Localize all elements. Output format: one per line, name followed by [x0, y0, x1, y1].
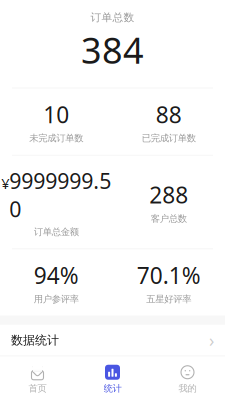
staticText: 首页	[28, 383, 46, 394]
button[interactable]: 数据统计	[0, 325, 225, 356]
staticText: 用户参评率	[34, 293, 79, 305]
staticText: 未完成订单数	[29, 132, 83, 144]
staticText: ›	[209, 329, 214, 352]
staticText: 数据统计	[11, 333, 59, 348]
staticText: 70.1%	[137, 260, 201, 290]
staticText: 88	[156, 99, 182, 129]
staticText: 统计	[103, 383, 121, 394]
staticText: 10	[43, 99, 69, 129]
button[interactable]: 我的	[150, 360, 225, 398]
staticText: 订单总数	[90, 11, 134, 24]
staticText: ¥	[1, 173, 9, 193]
staticText: 五星好评率	[146, 293, 191, 305]
button[interactable]: 首页	[0, 360, 75, 398]
button[interactable]: 统计	[75, 360, 150, 398]
staticText: 已完成订单数	[142, 132, 196, 144]
staticText: 客户总数	[151, 213, 187, 224]
staticText: 94%	[34, 260, 79, 290]
staticText: 288	[149, 180, 188, 210]
staticText: 384	[81, 26, 144, 74]
staticText: 我的	[178, 383, 196, 394]
staticText: 9999999.50	[9, 166, 111, 223]
staticText: 订单总金额	[34, 226, 79, 238]
